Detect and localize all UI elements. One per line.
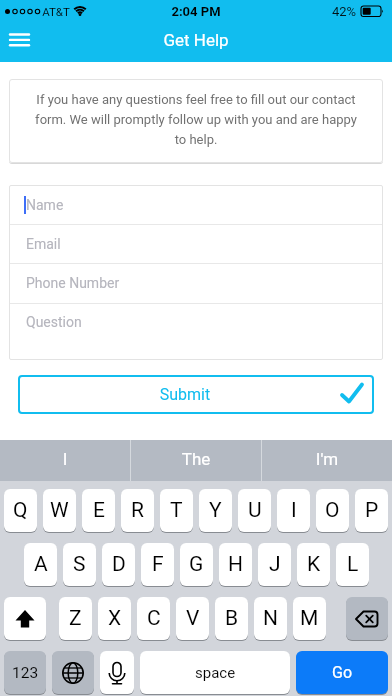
staticText: L <box>347 552 359 577</box>
button[interactable]: N <box>254 597 287 640</box>
staticText: Z <box>69 606 82 631</box>
button[interactable]: Phone Number <box>10 264 382 302</box>
staticText: O <box>325 498 340 523</box>
button[interactable]: U <box>238 489 271 532</box>
staticText: T <box>170 498 183 523</box>
button[interactable]: R <box>121 489 154 532</box>
button[interactable]: space <box>140 651 290 694</box>
button[interactable]: F <box>141 543 174 586</box>
button[interactable] <box>346 597 388 640</box>
staticText: D <box>112 552 126 577</box>
staticText: I <box>291 498 297 523</box>
button[interactable]: 123 <box>4 651 46 694</box>
button[interactable]: G <box>180 543 213 586</box>
button[interactable]: The <box>131 438 261 479</box>
button[interactable]: L <box>336 543 369 586</box>
button[interactable]: Question <box>10 304 382 359</box>
button[interactable] <box>100 651 134 694</box>
button[interactable] <box>52 651 94 694</box>
button[interactable]: P <box>355 489 388 532</box>
staticText: C <box>147 606 161 631</box>
button[interactable]: S <box>63 543 96 586</box>
button[interactable]: D <box>102 543 135 586</box>
staticText: 42% <box>330 4 358 19</box>
staticText: X <box>108 606 122 631</box>
staticText: AT&T <box>41 5 71 18</box>
staticText: 123 <box>12 664 39 682</box>
staticText: U <box>248 498 262 523</box>
staticText: Question <box>26 314 82 330</box>
staticText: Go <box>332 663 353 682</box>
staticText: W <box>50 498 69 523</box>
staticText: B <box>225 606 239 631</box>
button[interactable] <box>18 375 374 414</box>
button[interactable]: W <box>43 489 76 532</box>
staticText: R <box>131 498 144 523</box>
button[interactable]: H <box>219 543 252 586</box>
staticText: H <box>228 552 243 577</box>
button[interactable]: E <box>82 489 115 532</box>
staticText: If you have any questions feel free to f… <box>9 92 383 147</box>
button[interactable]: A <box>24 543 57 586</box>
button[interactable]: Email <box>10 225 382 263</box>
staticText: J <box>269 552 281 577</box>
staticText: F <box>152 552 164 577</box>
button[interactable]: V <box>176 597 209 640</box>
button[interactable]: M <box>293 597 326 640</box>
button[interactable]: Go <box>296 651 388 694</box>
staticText: G <box>189 552 204 577</box>
button[interactable] <box>6 28 46 56</box>
button[interactable]: Z <box>59 597 92 640</box>
staticText: E <box>93 498 105 523</box>
staticText: A <box>34 552 48 577</box>
button[interactable]: T <box>160 489 193 532</box>
staticText: Name <box>26 197 64 213</box>
button[interactable]: I <box>277 489 310 532</box>
button[interactable]: I <box>0 438 130 479</box>
button[interactable]: B <box>215 597 248 640</box>
staticText: Get Help <box>136 30 256 50</box>
staticText: M <box>300 606 319 631</box>
staticText: N <box>263 606 278 631</box>
staticText: Submit <box>18 385 352 404</box>
button[interactable]: Q <box>4 489 37 532</box>
button[interactable]: I'm <box>262 438 392 479</box>
staticText: P <box>365 498 379 523</box>
button[interactable]: Y <box>199 489 232 532</box>
staticText: The <box>131 449 261 469</box>
staticText: V <box>186 606 200 631</box>
button[interactable]: J <box>258 543 291 586</box>
button[interactable]: K <box>297 543 330 586</box>
staticText: Y <box>209 498 222 523</box>
staticText: 2:04 PM <box>146 4 246 19</box>
staticText: Phone Number <box>26 275 120 291</box>
staticText: K <box>307 552 321 577</box>
button[interactable]: C <box>137 597 170 640</box>
button[interactable]: Name <box>10 186 382 224</box>
staticText: I'm <box>262 449 392 469</box>
staticText: I <box>0 449 130 469</box>
staticText: Email <box>26 236 61 252</box>
staticText: S <box>73 552 86 577</box>
button[interactable]: X <box>98 597 131 640</box>
button[interactable] <box>4 597 46 640</box>
staticText: Q <box>13 498 28 523</box>
staticText: space <box>195 664 236 682</box>
button[interactable]: O <box>316 489 349 532</box>
